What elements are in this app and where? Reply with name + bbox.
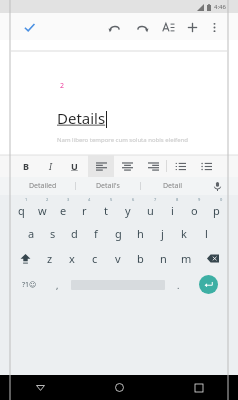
- button[interactable]: Align center: [114, 155, 140, 177]
- staticText: w: [38, 203, 47, 218]
- staticText: z: [47, 251, 53, 266]
- staticText: B: [23, 160, 29, 172]
- staticText: 9: [198, 197, 201, 202]
- staticText: m: [181, 251, 192, 266]
- button[interactable]: b: [129, 246, 152, 271]
- staticText: l: [205, 226, 208, 241]
- button[interactable]: s: [42, 221, 63, 246]
- staticText: j: [161, 226, 164, 241]
- button[interactable]: x: [61, 246, 83, 271]
- button[interactable]: Done: [18, 16, 40, 38]
- button[interactable]: 7: [139, 195, 161, 221]
- button[interactable]: B: [14, 155, 38, 177]
- button[interactable]: Numbered list: [167, 155, 193, 177]
- staticText: 3: [67, 197, 70, 202]
- staticText: 4: [88, 197, 91, 202]
- staticText: Details: [57, 108, 106, 128]
- button[interactable]: Insert: [182, 17, 202, 37]
- button[interactable]: Enter: [199, 275, 218, 294]
- button[interactable]: j: [151, 221, 173, 246]
- staticText: 7: [154, 197, 157, 202]
- staticText: 5: [110, 197, 113, 202]
- staticText: 2: [60, 81, 65, 91]
- button[interactable]: 2: [32, 195, 53, 221]
- button[interactable]: f: [85, 221, 107, 246]
- staticText: Nam libero tempore cum soluta nobis elei…: [57, 136, 188, 144]
- button[interactable]: Align left: [88, 155, 114, 177]
- button[interactable]: 9: [183, 195, 205, 221]
- button[interactable]: g: [107, 221, 129, 246]
- staticText: f: [94, 226, 98, 241]
- staticText: s: [50, 226, 56, 241]
- button[interactable]: I: [38, 155, 62, 177]
- button[interactable]: Undo: [104, 17, 124, 37]
- button[interactable]: 5: [95, 195, 117, 221]
- button[interactable]: m: [175, 246, 198, 271]
- staticText: 0: [220, 197, 223, 202]
- staticText: a: [28, 226, 35, 241]
- button[interactable]: h: [129, 221, 151, 246]
- staticText: ,: [56, 279, 59, 291]
- button[interactable]: c: [83, 246, 106, 271]
- staticText: r: [82, 203, 87, 218]
- staticText: o: [191, 203, 198, 218]
- staticText: n: [160, 251, 167, 266]
- staticText: y: [125, 203, 131, 218]
- button[interactable]: Detailed: [11, 177, 75, 195]
- button[interactable]: l: [195, 221, 217, 246]
- button[interactable]: k: [173, 221, 195, 246]
- staticText: I: [49, 160, 52, 172]
- staticText: 8: [176, 197, 179, 202]
- button[interactable]: d: [63, 221, 85, 246]
- button[interactable]: Detail: [141, 177, 205, 195]
- button[interactable]: Detail's: [76, 177, 140, 195]
- button[interactable]: n: [152, 246, 175, 271]
- staticText: c: [92, 251, 98, 266]
- button[interactable]: v: [106, 246, 129, 271]
- button[interactable]: a: [21, 221, 42, 246]
- button[interactable]: Symbols: [11, 271, 47, 298]
- button[interactable]: ,: [47, 271, 68, 298]
- button[interactable]: z: [39, 246, 61, 271]
- button[interactable]: 4: [74, 195, 95, 221]
- staticText: x: [69, 251, 75, 266]
- staticText: h: [137, 226, 144, 241]
- staticText: q: [18, 203, 25, 218]
- staticText: 1: [25, 197, 28, 202]
- button[interactable]: Align right: [140, 155, 166, 177]
- button[interactable]: Shift: [11, 246, 39, 271]
- button[interactable]: Backspace: [198, 246, 227, 271]
- staticText: 2: [46, 197, 49, 202]
- button[interactable]: Home: [80, 375, 159, 400]
- staticText: d: [71, 226, 78, 241]
- staticText: b: [137, 251, 144, 266]
- button[interactable]: Back: [0, 375, 80, 400]
- button[interactable]: Format text: [158, 17, 178, 37]
- staticText: ?1☺: [22, 280, 37, 290]
- button[interactable]: Voice input: [205, 177, 229, 195]
- staticText: p: [213, 203, 220, 218]
- staticText: .: [177, 279, 180, 291]
- staticText: v: [115, 251, 121, 266]
- button[interactable]: 1: [11, 195, 32, 221]
- staticText: 6: [132, 197, 135, 202]
- staticText: g: [115, 226, 122, 241]
- button[interactable]: 8: [161, 195, 183, 221]
- button[interactable]: Redo: [132, 17, 152, 37]
- button[interactable]: 3: [53, 195, 74, 221]
- button[interactable]: .: [168, 271, 189, 298]
- staticText: t: [104, 203, 108, 218]
- staticText: k: [181, 226, 187, 241]
- button[interactable]: Bulleted list: [193, 155, 219, 177]
- staticText: Detail's: [96, 181, 120, 191]
- button[interactable]: 0: [205, 195, 227, 221]
- button[interactable]: U: [62, 155, 86, 177]
- button[interactable]: More options: [204, 17, 224, 37]
- staticText: u: [147, 203, 154, 218]
- staticText: U: [71, 160, 78, 172]
- staticText: Detailed: [29, 181, 57, 191]
- button[interactable]: Recent apps: [159, 375, 238, 400]
- button[interactable]: 6: [117, 195, 139, 221]
- staticText: i: [171, 203, 174, 218]
